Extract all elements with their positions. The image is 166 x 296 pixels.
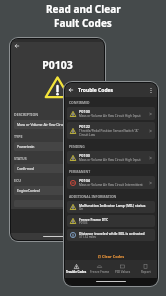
staticText: P0100 <box>79 153 91 158</box>
staticText: Read and Clear <box>46 2 121 16</box>
button[interactable]: Distance traveled while MIL is activated <box>67 229 155 241</box>
staticText: PERMANENT <box>69 169 91 174</box>
staticText: Distance traveled while MIL is activated <box>79 231 145 235</box>
staticText: PENDING <box>69 144 85 149</box>
button[interactable]: Clear Codes <box>65 252 157 260</box>
staticText: P0122 <box>79 124 91 129</box>
staticText: 311.52 miles <box>79 235 97 239</box>
staticText: CONFIRMED <box>69 100 90 105</box>
staticText: P0100 <box>79 109 91 114</box>
staticText: Throttle/Pedal Position Sensor/Switch "A… <box>79 129 139 137</box>
staticText: Fault Codes <box>54 16 112 30</box>
button[interactable]: Malfunction Indicator Lamp (MIL) status <box>67 201 155 213</box>
staticText: Powertrain <box>17 144 35 149</box>
staticText: Malfunction Indicator Lamp (MIL) status <box>79 203 146 207</box>
staticText: STATUS <box>14 156 27 161</box>
staticText: Mass or Volume Air flow Circuit Intermit… <box>79 183 143 187</box>
button[interactable]: P0122 <box>67 122 155 139</box>
staticText: Mass or Volume Air flow Circuit High Inp… <box>17 122 85 127</box>
staticText: Mass or Volume Air flow Circuit High Inp… <box>79 114 141 118</box>
staticText: DESCRIPTION <box>14 112 39 117</box>
staticText: Freeze Frame DTC <box>79 217 109 221</box>
staticText: On <box>79 207 84 211</box>
button[interactable]: Freeze Frame <box>88 260 111 278</box>
staticText: PID Values <box>115 270 131 274</box>
staticText: EngineControl <box>17 188 40 193</box>
staticText: Trouble Codes <box>66 270 87 274</box>
button[interactable]: PID Values <box>111 260 134 278</box>
staticText: P0103 <box>11 58 104 72</box>
button[interactable]: Trouble Codes <box>65 260 88 278</box>
staticText: Mass or Volume Air flow Circuit High Inp… <box>79 158 141 162</box>
staticText: ADDITIONAL INFORMATION <box>69 194 117 199</box>
button[interactable]: Back <box>67 86 75 94</box>
button[interactable]: Report <box>134 260 157 278</box>
staticText: Clear Codes <box>102 254 125 259</box>
staticText: P0103 <box>79 221 88 225</box>
staticText: Confirmed <box>17 166 34 171</box>
staticText: Online lookup <box>75 201 98 206</box>
button[interactable]: Freeze Frame DTC <box>67 215 155 227</box>
staticText: Trouble Codes <box>78 87 114 94</box>
button[interactable]: Online lookup <box>14 200 101 207</box>
staticText: ECU <box>14 178 22 183</box>
staticText: TYPE <box>14 134 23 139</box>
button[interactable]: Back <box>11 42 104 50</box>
button[interactable]: P0100 <box>67 107 155 120</box>
button[interactable]: P0100 <box>67 151 155 164</box>
staticText: Freeze Frame <box>90 270 110 274</box>
staticText: P0104 <box>79 178 91 183</box>
staticText: Report <box>141 270 151 274</box>
button[interactable]: More options <box>147 86 155 94</box>
button[interactable]: P0104 <box>67 176 155 189</box>
